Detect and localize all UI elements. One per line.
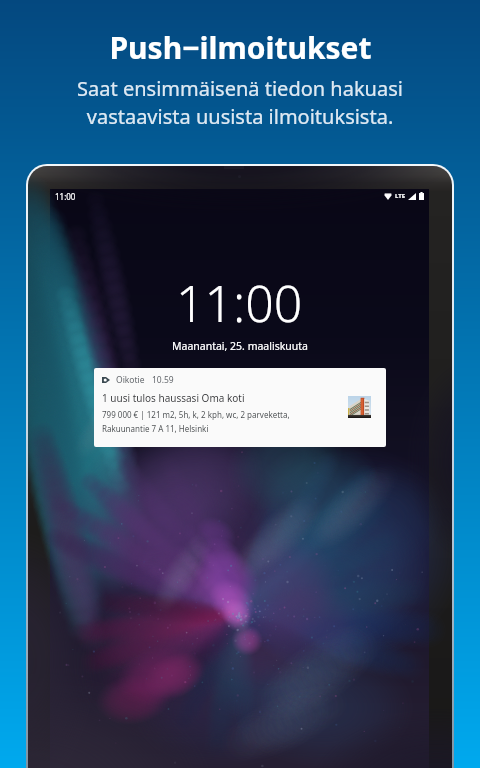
button[interactable]: Oikotie [94,368,386,447]
staticText: Maanantai, 25. maaliskuuta [172,339,308,353]
staticText: Push−ilmoitukset [109,27,372,68]
staticText: LTE [395,192,406,200]
staticText: Rakuunantie 7 A 11, Helsinki [102,423,209,434]
staticText: 1 uusi tulos haussasi Oma koti [102,391,245,405]
staticText: 11:00 [176,269,303,337]
staticText: Oikotie [116,374,145,386]
staticText: Saat ensimmäisenä tiedon hakuasi vastaav… [77,75,403,130]
staticText: 11:00 [55,191,76,202]
staticText: 10.59 [152,374,174,386]
staticText: 799 000 € | 121 m2, 5h, k, 2 kph, wc, 2 … [102,409,290,420]
